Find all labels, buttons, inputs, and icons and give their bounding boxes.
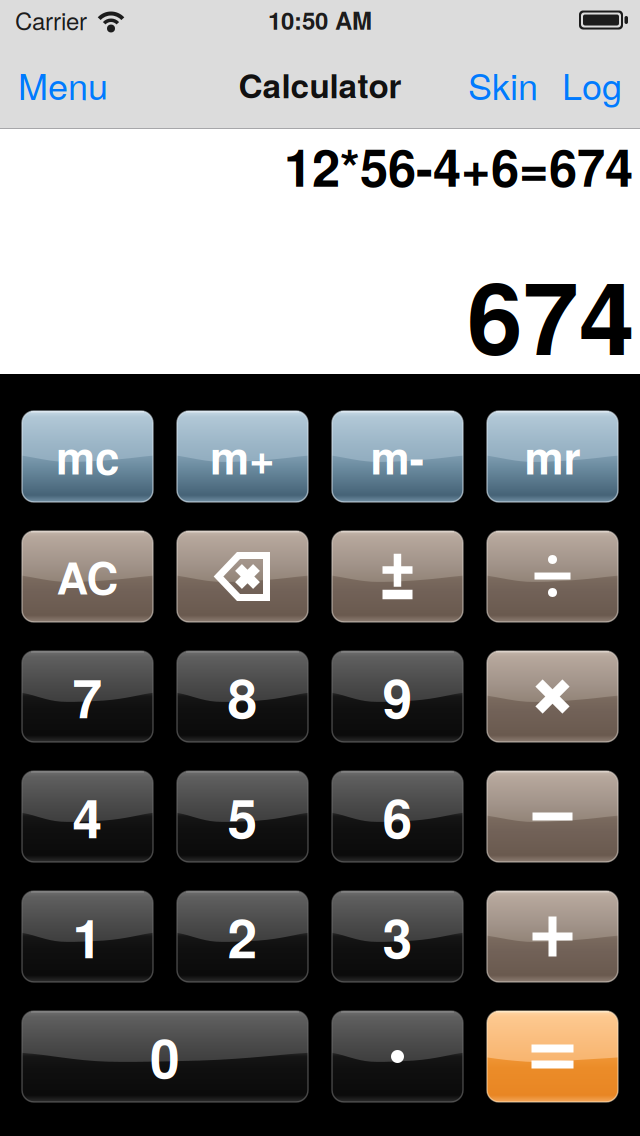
button[interactable]: m- bbox=[332, 411, 463, 502]
button[interactable]: 5 bbox=[177, 771, 308, 862]
button[interactable]: 3 bbox=[332, 891, 463, 982]
button[interactable]: 1 bbox=[22, 891, 153, 982]
staticText: 7 bbox=[72, 658, 102, 735]
staticText: m+ bbox=[210, 425, 275, 488]
button[interactable]: Plus minus bbox=[332, 531, 463, 622]
button[interactable]: Plus bbox=[487, 891, 618, 982]
staticText: Skin bbox=[468, 59, 538, 110]
button[interactable]: Log bbox=[556, 51, 628, 118]
button[interactable]: 4 bbox=[22, 771, 153, 862]
button[interactable]: 8 bbox=[177, 651, 308, 742]
button[interactable]: Divide bbox=[487, 531, 618, 622]
button[interactable]: 9 bbox=[332, 651, 463, 742]
staticText: Calculator bbox=[238, 61, 401, 108]
staticText: 4 bbox=[72, 778, 102, 855]
button[interactable]: Backspace bbox=[177, 531, 308, 622]
button[interactable]: 7 bbox=[22, 651, 153, 742]
staticText: 0 bbox=[150, 1018, 180, 1095]
staticText: mr bbox=[524, 425, 580, 488]
staticText: 3 bbox=[382, 898, 412, 975]
staticText: AC bbox=[56, 545, 118, 608]
staticText: 10:50 AM bbox=[268, 3, 372, 37]
button[interactable]: Equals bbox=[487, 1011, 618, 1102]
button[interactable]: mr bbox=[487, 411, 618, 502]
button[interactable]: Skin bbox=[462, 51, 544, 118]
button[interactable]: Multiply bbox=[487, 651, 618, 742]
staticText: Carrier bbox=[15, 3, 87, 37]
staticText: 2 bbox=[227, 898, 257, 975]
staticText: Menu bbox=[18, 59, 108, 110]
button[interactable]: Minus bbox=[487, 771, 618, 862]
button[interactable]: 6 bbox=[332, 771, 463, 862]
button[interactable]: m+ bbox=[177, 411, 308, 502]
staticText: m- bbox=[370, 425, 424, 488]
staticText: 9 bbox=[382, 658, 412, 735]
staticText: 674 bbox=[467, 242, 635, 386]
button[interactable]: Menu bbox=[12, 51, 114, 118]
button[interactable]: Decimal point bbox=[332, 1011, 463, 1102]
staticText: 1 bbox=[72, 898, 102, 975]
button[interactable]: mc bbox=[22, 411, 153, 502]
staticText: 8 bbox=[227, 658, 257, 735]
staticText: 6 bbox=[382, 778, 412, 855]
staticText: 12*56-4+6=674 bbox=[284, 130, 633, 202]
staticText: mc bbox=[56, 425, 119, 488]
staticText: Log bbox=[562, 59, 622, 110]
button[interactable]: AC bbox=[22, 531, 153, 622]
button[interactable]: 0 bbox=[22, 1011, 308, 1102]
button[interactable]: 2 bbox=[177, 891, 308, 982]
staticText: 5 bbox=[227, 778, 257, 855]
